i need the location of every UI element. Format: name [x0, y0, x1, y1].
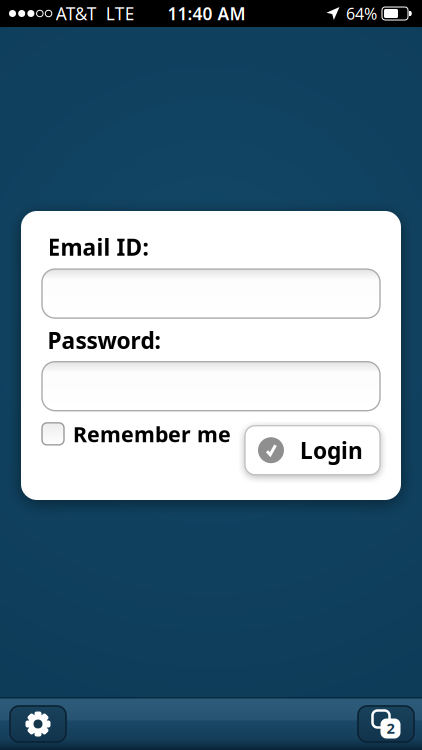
- button[interactable]: Remember me: [42, 420, 231, 448]
- staticText: 11:40 AM: [167, 2, 245, 25]
- staticText: Login: [300, 435, 363, 465]
- staticText: LTE: [106, 2, 135, 25]
- button[interactable]: Pages: [358, 706, 414, 742]
- button[interactable]: Settings: [10, 706, 66, 742]
- button[interactable]: Login: [245, 420, 380, 475]
- staticText: 2: [386, 718, 394, 738]
- staticText: Remember me: [73, 420, 231, 448]
- staticText: Password:: [47, 325, 160, 355]
- staticText: Email ID:: [47, 232, 148, 262]
- staticText: 64%: [346, 3, 377, 24]
- staticText: AT&T: [56, 2, 97, 25]
